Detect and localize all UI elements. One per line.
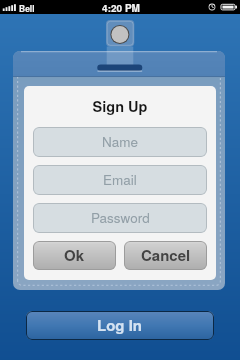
staticText: Bell (19, 2, 35, 14)
button[interactable]: Email (33, 165, 207, 195)
staticText: Cancel (141, 244, 191, 265)
staticText: Name (102, 132, 138, 151)
button[interactable]: Password (33, 203, 207, 233)
staticText: Email (103, 170, 137, 189)
button[interactable]: Name (33, 127, 207, 157)
button[interactable]: Cancel (124, 241, 207, 270)
staticText: Log In (97, 314, 143, 335)
staticText: Sign Up (24, 96, 216, 117)
staticText: 4:20 PM (1, 1, 240, 15)
staticText: Password (91, 208, 150, 227)
button[interactable]: Ok (33, 241, 116, 270)
button[interactable]: Log In (26, 311, 214, 340)
staticText: Ok (64, 244, 85, 265)
